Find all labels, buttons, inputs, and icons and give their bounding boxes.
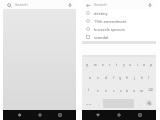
staticText: m [140,88,144,93]
staticText: n [133,88,136,93]
button[interactable]: s [94,71,102,83]
button[interactable]: z [94,84,102,96]
button[interactable]: m [138,84,145,96]
button[interactable]: ?123 [83,97,94,109]
button[interactable]: o [141,58,148,70]
staticText: Search [94,2,107,7]
staticText: Search [15,2,28,7]
button[interactable]: p [148,58,155,70]
staticText: h [126,75,129,80]
button[interactable]: e [99,58,106,70]
button[interactable]: Home [35,110,45,120]
button[interactable]: Voice search [67,2,73,8]
staticText: . [139,101,140,106]
button[interactable]: Recent apps [135,110,145,120]
staticText: p [150,62,153,67]
button[interactable]: u [127,58,134,70]
staticText: , [98,101,99,106]
button[interactable]: , [94,97,102,109]
button[interactable]: Search [6,2,12,8]
button[interactable]: brussels sprouts [82,25,156,33]
staticText: k [141,75,143,80]
button[interactable]: q [83,58,91,70]
button[interactable]: ⌫ [145,84,155,96]
staticText: b [126,88,129,93]
staticText: d [105,75,108,80]
button[interactable]: w [91,58,99,70]
button[interactable]: Back [14,110,24,120]
button[interactable]: l [145,71,152,83]
staticText: t [116,62,118,67]
staticText: scandal [94,35,109,40]
button[interactable]: k [138,71,145,83]
button[interactable]: destiny [82,9,156,17]
button[interactable]: ⇧ [83,84,94,96]
button[interactable]: v [117,84,124,96]
staticText: q [86,62,89,67]
staticText: ⇧ [87,88,90,92]
staticText: ?123 [86,102,92,105]
staticText: l [148,75,149,80]
button[interactable]: f [110,71,117,83]
staticText: f [113,75,115,80]
button[interactable]: Back [93,110,103,120]
staticText: o [143,62,146,67]
staticText: u [129,62,132,67]
staticText: destiny [94,11,108,16]
staticText: c [113,88,115,93]
button[interactable]: Search [3,0,76,9]
staticText: ⌫ [148,88,153,92]
button[interactable]: Recent apps [55,110,65,120]
button[interactable]: d [102,71,110,83]
button[interactable]: a [86,71,94,83]
staticText: z [97,88,99,93]
button[interactable]: c [110,84,117,96]
button[interactable]: n [131,84,138,96]
button[interactable]: scandal [82,33,156,41]
button[interactable]: i [134,58,141,70]
button[interactable]: t [113,58,120,70]
button[interactable]: b [124,84,131,96]
button[interactable]: h [124,71,131,83]
button[interactable]: 19th amendment [82,17,156,25]
button[interactable]: x [102,84,110,96]
staticText: j [134,75,135,80]
button[interactable]: Back [85,2,91,8]
button[interactable]: Voice search [147,2,153,8]
staticText: s [97,75,99,80]
staticText: e [102,62,104,67]
staticText: i [137,62,138,67]
staticText: 19th amendment [94,19,127,24]
staticText: brussels sprouts [94,27,125,32]
staticText: r [109,62,111,67]
staticText: w [94,62,97,67]
button[interactable]: r [106,58,113,70]
button[interactable]: j [131,71,138,83]
button[interactable]: Search [143,97,155,109]
staticText: a [89,75,91,80]
button[interactable]: Home [114,110,124,120]
button[interactable]: Back [82,0,156,9]
staticText: x [105,88,107,93]
button[interactable]: y [120,58,127,70]
button[interactable]: g [117,71,124,83]
staticText: v [120,88,122,93]
staticText: g [119,75,122,80]
staticText: y [123,62,125,67]
